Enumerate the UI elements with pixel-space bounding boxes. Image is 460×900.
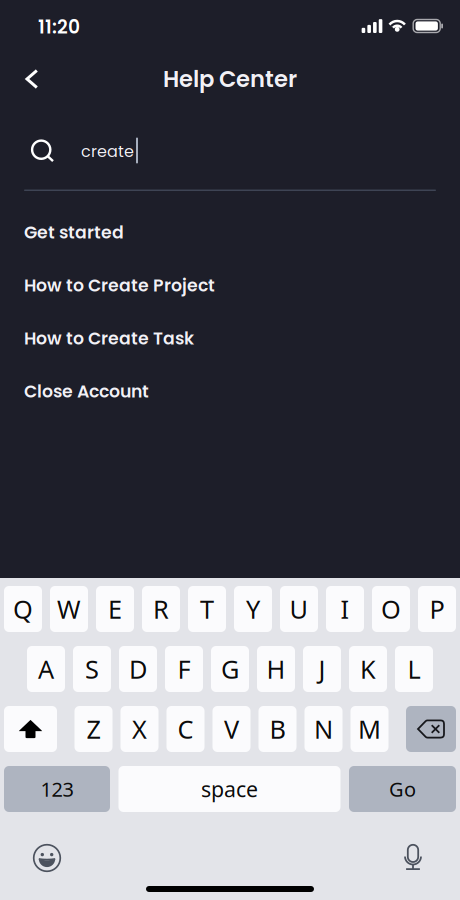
button[interactable]: I xyxy=(326,586,364,632)
button[interactable]: A xyxy=(27,646,65,692)
staticText: Close Account xyxy=(24,379,149,404)
button[interactable]: V xyxy=(212,706,250,752)
staticText: Q xyxy=(13,592,33,626)
staticText: Z xyxy=(86,712,100,746)
staticText: O xyxy=(381,592,401,626)
button[interactable]: X xyxy=(120,706,158,752)
staticText: 11:20 xyxy=(38,14,80,40)
button[interactable]: B xyxy=(258,706,296,752)
staticText: How to Create Task xyxy=(24,326,194,351)
staticText: space xyxy=(201,775,258,803)
staticText: create xyxy=(81,140,134,163)
button[interactable]: Emoji keyboard xyxy=(27,838,67,878)
button[interactable]: E xyxy=(96,586,134,632)
button[interactable]: D xyxy=(119,646,157,692)
button[interactable]: Get started xyxy=(0,206,460,259)
staticText: Go xyxy=(389,776,416,802)
staticText: T xyxy=(200,592,214,626)
button[interactable]: J xyxy=(303,646,341,692)
button[interactable]: space xyxy=(118,766,340,812)
button[interactable]: Go xyxy=(349,766,456,812)
staticText: P xyxy=(429,592,444,626)
staticText: M xyxy=(358,712,381,746)
button[interactable]: P xyxy=(418,586,456,632)
button[interactable]: L xyxy=(395,646,433,692)
button[interactable]: Close Account xyxy=(0,365,460,418)
button[interactable]: How to Create Project xyxy=(0,259,460,312)
button[interactable]: Delete xyxy=(406,706,456,752)
button[interactable]: O xyxy=(372,586,410,632)
button[interactable]: Shift xyxy=(4,706,57,752)
button[interactable]: R xyxy=(142,586,180,632)
button[interactable]: Back xyxy=(11,58,53,100)
button[interactable]: N xyxy=(304,706,342,752)
button[interactable]: 123 xyxy=(4,766,110,812)
staticText: G xyxy=(221,652,239,686)
staticText: Y xyxy=(246,592,260,626)
staticText: D xyxy=(129,652,147,686)
button[interactable]: U xyxy=(280,586,318,632)
button[interactable]: F xyxy=(165,646,203,692)
button[interactable]: M xyxy=(350,706,388,752)
button[interactable]: T xyxy=(188,586,226,632)
staticText: R xyxy=(153,592,169,626)
staticText: E xyxy=(108,592,122,626)
staticText: C xyxy=(177,712,193,746)
staticText: L xyxy=(407,652,420,686)
button[interactable]: W xyxy=(50,586,88,632)
staticText: 123 xyxy=(40,776,73,802)
button[interactable]: G xyxy=(211,646,249,692)
staticText: K xyxy=(360,652,376,686)
staticText: S xyxy=(85,652,99,686)
staticText: How to Create Project xyxy=(24,273,215,298)
staticText: A xyxy=(38,652,54,686)
staticText: N xyxy=(314,712,333,746)
button[interactable]: Y xyxy=(234,586,272,632)
staticText: B xyxy=(269,712,285,746)
staticText: U xyxy=(289,592,308,626)
staticText: W xyxy=(57,592,81,626)
button[interactable]: K xyxy=(349,646,387,692)
staticText: H xyxy=(266,652,285,686)
button[interactable]: H xyxy=(257,646,295,692)
staticText: F xyxy=(177,652,190,686)
button[interactable]: Z xyxy=(74,706,112,752)
button[interactable]: Q xyxy=(4,586,42,632)
staticText: V xyxy=(224,712,239,746)
staticText: I xyxy=(340,592,349,626)
button[interactable]: C xyxy=(166,706,204,752)
button[interactable]: S xyxy=(73,646,111,692)
staticText: Help Center xyxy=(163,63,297,95)
staticText: X xyxy=(132,712,147,746)
staticText: Get started xyxy=(24,220,124,245)
button[interactable]: How to Create Task xyxy=(0,312,460,365)
button[interactable]: Dictate xyxy=(393,838,433,878)
staticText: J xyxy=(318,652,325,686)
